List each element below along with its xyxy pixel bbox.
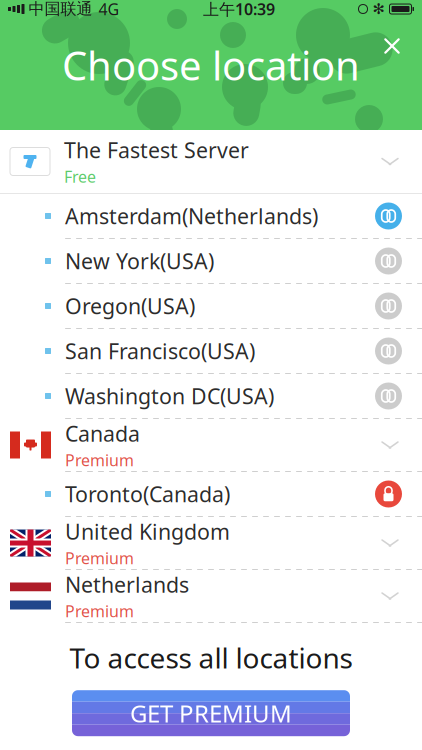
staticText: Washington DC(USA)	[65, 382, 274, 410]
staticText: Premium	[65, 547, 134, 569]
staticText: The Fastest Server	[64, 136, 249, 164]
button[interactable]: United Kingdom	[0, 517, 422, 570]
staticText: Oregon(USA)	[65, 292, 195, 320]
staticText: Premium	[65, 449, 134, 471]
staticText: ✻	[372, 1, 384, 17]
staticText: United Kingdom	[65, 517, 230, 545]
button[interactable]: GET PREMIUM	[72, 690, 350, 736]
staticText: San Francisco(USA)	[65, 337, 255, 365]
button[interactable]: Toronto(Canada)	[0, 472, 422, 517]
staticText: GET PREMIUM	[130, 697, 292, 729]
staticText: Premium	[65, 600, 134, 622]
button[interactable]: Canada	[0, 419, 422, 472]
button[interactable]: New York(USA)	[0, 239, 422, 284]
button[interactable]: Close	[370, 24, 414, 68]
staticText: 上午10:39	[203, 0, 275, 20]
button[interactable]: The Fastest Server	[0, 130, 422, 194]
button[interactable]: Netherlands	[0, 570, 422, 623]
button[interactable]: San Francisco(USA)	[0, 329, 422, 374]
staticText: Netherlands	[65, 570, 189, 598]
staticText: Canada	[65, 419, 140, 447]
staticText: Amsterdam(Netherlands)	[65, 202, 318, 230]
button[interactable]: Washington DC(USA)	[0, 374, 422, 419]
staticText: 中国联通	[28, 0, 92, 19]
staticText: Choose location	[62, 38, 360, 91]
staticText: Toronto(Canada)	[65, 480, 230, 508]
staticText: Free	[64, 166, 96, 187]
staticText: To access all locations	[69, 639, 352, 676]
button[interactable]: Amsterdam(Netherlands)	[0, 194, 422, 239]
staticText: 4G	[98, 0, 119, 20]
button[interactable]: Oregon(USA)	[0, 284, 422, 329]
staticText: New York(USA)	[65, 247, 214, 275]
